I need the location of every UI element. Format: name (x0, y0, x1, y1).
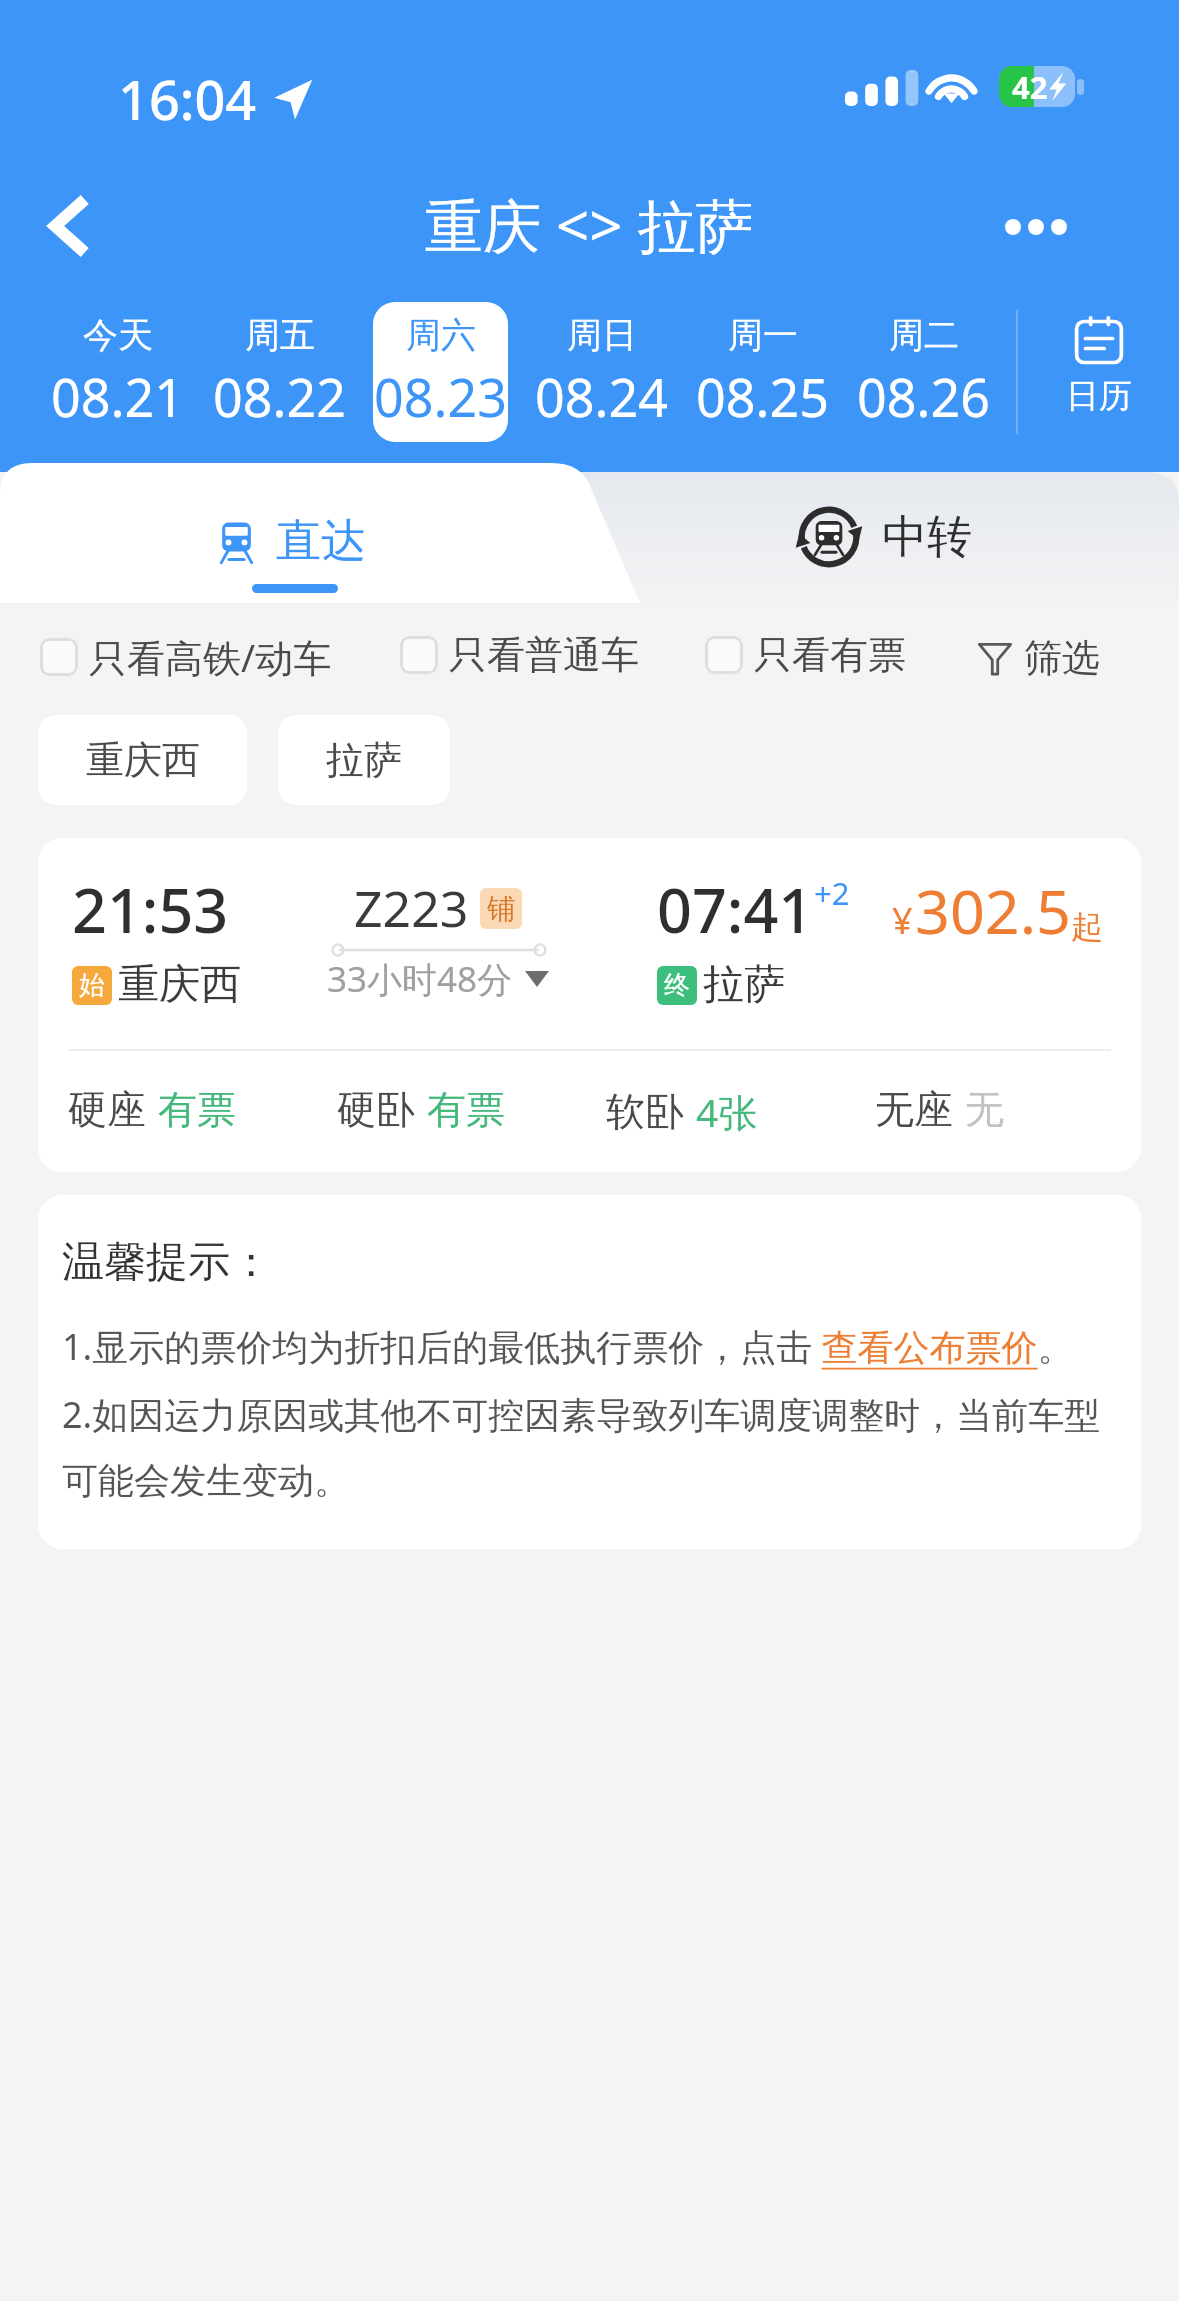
staticText: 只看有票 (754, 631, 906, 679)
staticText: 302.5 (915, 869, 1071, 952)
staticText: 无 (965, 1085, 1004, 1134)
staticText: 筛选 (1024, 634, 1100, 682)
staticText: 硬卧 (337, 1085, 415, 1134)
staticText: 只看高铁/动车 (89, 631, 332, 683)
staticText: +2 (814, 872, 850, 914)
staticText: 1.显示的票价均为折扣后的最低执行票价，点击 查看公布票价。 2.如因运力原因或… (62, 1322, 1123, 1503)
staticText: 21:53 (72, 868, 229, 951)
staticText: 软卧 (606, 1087, 684, 1136)
staticText: 有票 (427, 1085, 505, 1134)
staticText: 无座 (875, 1085, 953, 1134)
staticText: 直达 (276, 513, 366, 570)
staticText: 08.24 (535, 361, 668, 432)
staticText: 08.26 (857, 361, 990, 432)
staticText: 08.22 (213, 361, 346, 432)
staticText: 起 (1071, 907, 1103, 947)
button[interactable]: 今天 (49, 302, 185, 442)
button[interactable]: Back (21, 181, 111, 271)
button[interactable]: 日历 (1018, 292, 1179, 452)
staticText: 重庆西 (86, 736, 200, 784)
staticText: 周日 (567, 313, 637, 357)
button[interactable] (0, 463, 590, 603)
staticText: 4张 (696, 1085, 758, 1138)
button[interactable]: 只看高铁/动车 (40, 631, 332, 683)
button[interactable]: 周五 (211, 302, 347, 442)
staticText: Z223 (354, 874, 469, 942)
staticText: 只看普通车 (449, 631, 639, 679)
staticText: 周一 (728, 313, 798, 357)
button[interactable]: 周一 (695, 302, 830, 442)
staticText: 周二 (889, 313, 959, 357)
staticText: 重庆西 (118, 959, 241, 1011)
staticText: 33小时48分 (327, 955, 513, 1003)
button[interactable]: 只看普通车 (400, 631, 639, 679)
staticText: 日历 (1066, 375, 1132, 417)
staticText: ¥ (892, 896, 913, 945)
staticText: 始 (79, 969, 105, 1002)
button[interactable]: 拉萨 (278, 715, 450, 805)
staticText: 重庆 <> 拉萨 (425, 185, 754, 264)
button[interactable]: 周日 (534, 302, 669, 442)
button[interactable]: 筛选 (978, 634, 1100, 682)
button[interactable]: 周六 (373, 302, 508, 442)
staticText: 有票 (158, 1085, 236, 1134)
staticText: 08.25 (696, 361, 829, 432)
button[interactable]: More options (990, 182, 1082, 272)
staticText: 拉萨 (703, 959, 785, 1011)
staticText: 终 (664, 969, 690, 1002)
staticText: 周六 (406, 313, 476, 357)
staticText: 温馨提示： (62, 1236, 272, 1289)
staticText: 周五 (245, 313, 315, 357)
staticText: 07:41 (657, 868, 814, 951)
staticText: 08.23 (374, 361, 507, 432)
staticText: 今天 (83, 313, 153, 357)
staticText: 08.21 (51, 361, 184, 432)
button[interactable]: 21:53 (38, 838, 1141, 1172)
button[interactable]: 重庆西 (38, 715, 247, 805)
staticText: 拉萨 (326, 736, 402, 784)
staticText: 16:04 (118, 62, 257, 136)
button[interactable] (650, 463, 1179, 603)
staticText: 42 (1012, 66, 1048, 107)
button[interactable]: 只看有票 (705, 631, 906, 679)
staticText: 硬座 (68, 1085, 146, 1134)
staticText: 中转 (882, 509, 972, 566)
button[interactable]: 周二 (856, 302, 991, 442)
staticText: 铺 (487, 891, 515, 926)
